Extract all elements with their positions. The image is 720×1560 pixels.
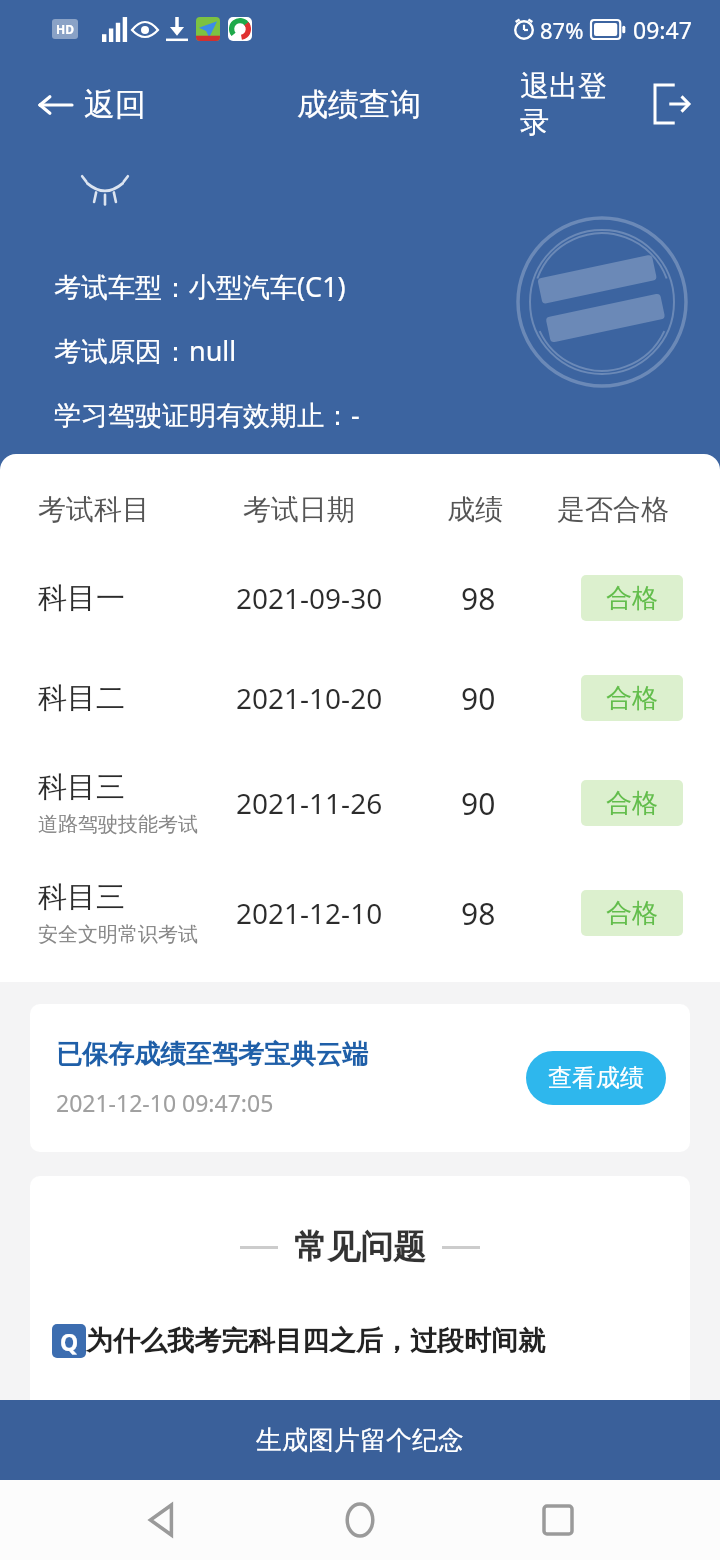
button[interactable]: 科目二 xyxy=(0,648,720,748)
staticText: 合格 xyxy=(606,897,658,930)
button[interactable]: Logout xyxy=(646,78,698,130)
staticText: 为什么我考完科目四之后，过段时间就 xyxy=(86,1324,545,1358)
button[interactable]: 科目三 xyxy=(0,748,720,858)
staticText: 成绩查询 xyxy=(297,85,421,124)
staticText: 道路驾驶技能考试 xyxy=(38,812,198,837)
button[interactable]: 科目一 xyxy=(0,548,720,648)
staticText: 87% xyxy=(540,15,584,45)
button[interactable]: Q xyxy=(52,1324,690,1358)
staticText: 科目二 xyxy=(38,680,125,717)
staticText: 成绩 xyxy=(447,492,503,527)
staticText: 考试原因：null xyxy=(54,332,237,369)
staticText: 考试车型：小型汽车(C1) xyxy=(54,268,346,305)
button[interactable]: 返回 xyxy=(30,79,154,130)
button[interactable]: 已保存成绩至驾考宝典云端 xyxy=(30,1004,690,1152)
staticText: HD xyxy=(56,21,74,37)
staticText: 合格 xyxy=(606,787,658,820)
staticText: 生成图片留个纪念 xyxy=(256,1424,464,1457)
button[interactable]: 科目三 xyxy=(0,858,720,968)
button[interactable]: 退出登录 xyxy=(520,68,612,140)
staticText: 98 xyxy=(461,893,496,934)
staticText: 已保存成绩至驾考宝典云端 xyxy=(56,1038,368,1071)
staticText: 09:47 xyxy=(633,14,692,45)
staticText: 2021-11-26 xyxy=(236,784,383,822)
staticText: 90 xyxy=(461,678,496,719)
staticText: 学习驾驶证明有效期止：- xyxy=(54,396,360,433)
staticText: 2021-12-10 09:47:05 xyxy=(56,1087,274,1118)
staticText: 退出登录 xyxy=(520,68,612,140)
staticText: 合格 xyxy=(606,682,658,715)
button[interactable]: Recent apps xyxy=(523,1485,593,1555)
staticText: 查看成绩 xyxy=(548,1063,644,1093)
staticText: 考试日期 xyxy=(243,492,355,527)
button[interactable]: Home xyxy=(325,1485,395,1555)
staticText: 科目三 xyxy=(38,769,125,806)
staticText: Q xyxy=(60,1326,79,1357)
staticText: 是否合格 xyxy=(557,492,669,527)
staticText: 科目一 xyxy=(38,580,125,617)
button[interactable]: Back xyxy=(128,1485,198,1555)
staticText: 安全文明常识考试 xyxy=(38,922,198,947)
staticText: 2021-09-30 xyxy=(236,579,383,617)
staticText: 90 xyxy=(461,783,496,824)
staticText: 合格 xyxy=(606,582,658,615)
staticText: 2021-12-10 xyxy=(236,894,383,932)
button[interactable]: Hide xyxy=(78,172,132,208)
staticText: 98 xyxy=(461,578,496,619)
staticText: 常见问题 xyxy=(294,1226,426,1268)
staticText: 考试科目 xyxy=(38,492,150,527)
button[interactable]: 生成图片留个纪念 xyxy=(0,1400,720,1480)
staticText: 2021-10-20 xyxy=(236,679,383,717)
staticText: 科目三 xyxy=(38,879,125,916)
staticText: 返回 xyxy=(84,85,146,124)
button[interactable]: 查看成绩 xyxy=(526,1051,666,1105)
